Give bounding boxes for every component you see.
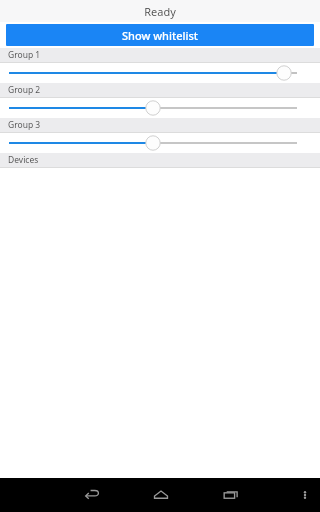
button[interactable]: Back (76, 479, 108, 511)
staticText: Devices (8, 154, 39, 166)
button[interactable]: Recent apps (215, 479, 247, 511)
staticText: Group 3 (8, 119, 41, 131)
button[interactable]: Group 2 (0, 83, 320, 97)
button[interactable] (0, 63, 320, 83)
button[interactable]: Home (145, 479, 177, 511)
button[interactable]: Devices (0, 153, 320, 167)
staticText: Ready (144, 4, 176, 19)
button[interactable]: Show whitelist (6, 24, 314, 46)
button[interactable]: Group 3 (0, 118, 320, 132)
button[interactable]: More options (291, 481, 319, 509)
button[interactable] (0, 98, 320, 118)
staticText: Show whitelist (122, 28, 198, 43)
staticText: Group 1 (8, 49, 41, 61)
button[interactable] (0, 133, 320, 153)
button[interactable]: Group 1 (0, 48, 320, 62)
staticText: Group 2 (8, 84, 41, 96)
